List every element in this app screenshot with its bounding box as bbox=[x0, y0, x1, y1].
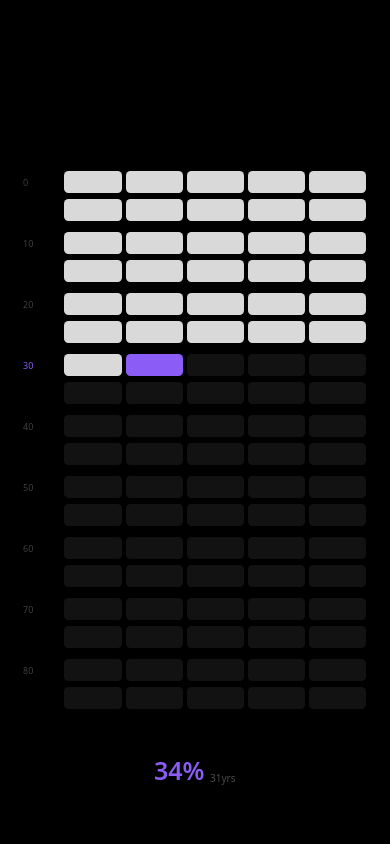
button[interactable]: Year 12 bbox=[187, 232, 244, 254]
button[interactable]: Year 23 bbox=[248, 293, 305, 315]
button[interactable]: Year 2 bbox=[187, 171, 244, 193]
button[interactable]: Year 7 bbox=[187, 199, 244, 221]
button[interactable]: Year 31 bbox=[126, 354, 183, 376]
button[interactable]: Year 30 bbox=[64, 354, 122, 376]
button[interactable]: Year 6 bbox=[126, 199, 183, 221]
button[interactable]: Year 26 bbox=[126, 321, 183, 343]
button[interactable]: Year 9 bbox=[309, 199, 366, 221]
staticText: 20 bbox=[23, 298, 34, 310]
staticText: 80 bbox=[23, 664, 34, 676]
button[interactable]: Year 17 bbox=[187, 260, 244, 282]
staticText: 30 bbox=[23, 359, 34, 371]
button[interactable]: Year 19 bbox=[309, 260, 366, 282]
button[interactable]: Year 15 bbox=[64, 260, 122, 282]
staticText: 10 bbox=[23, 237, 34, 249]
button[interactable]: Year 13 bbox=[248, 232, 305, 254]
button[interactable]: Year 5 bbox=[64, 199, 122, 221]
button[interactable]: 34% bbox=[154, 753, 236, 787]
button[interactable]: Year 16 bbox=[126, 260, 183, 282]
button[interactable]: Year 21 bbox=[126, 293, 183, 315]
staticText: 31yrs bbox=[210, 771, 236, 785]
staticText: 70 bbox=[23, 603, 34, 615]
button[interactable]: Year 8 bbox=[248, 199, 305, 221]
button[interactable]: Year 27 bbox=[187, 321, 244, 343]
staticText: 40 bbox=[23, 420, 34, 432]
button[interactable]: Year 20 bbox=[64, 293, 122, 315]
button[interactable]: Year 0 bbox=[64, 171, 122, 193]
button[interactable]: Year 10 bbox=[64, 232, 122, 254]
button[interactable]: Year 18 bbox=[248, 260, 305, 282]
button[interactable]: Year 28 bbox=[248, 321, 305, 343]
button[interactable]: Year 1 bbox=[126, 171, 183, 193]
button[interactable]: Year 3 bbox=[248, 171, 305, 193]
button[interactable]: Year 22 bbox=[187, 293, 244, 315]
button[interactable]: Year 25 bbox=[64, 321, 122, 343]
button[interactable]: Year 29 bbox=[309, 321, 366, 343]
button[interactable]: Year 24 bbox=[309, 293, 366, 315]
button[interactable]: Year 11 bbox=[126, 232, 183, 254]
staticText: 0 bbox=[23, 176, 29, 188]
button[interactable]: Year 14 bbox=[309, 232, 366, 254]
staticText: 34% bbox=[154, 753, 205, 787]
button[interactable]: Year 4 bbox=[309, 171, 366, 193]
